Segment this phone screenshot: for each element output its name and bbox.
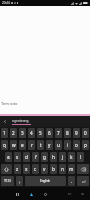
staticText: 2 [12, 130, 15, 136]
staticText: !?123 [4, 179, 11, 183]
staticText: p [84, 142, 87, 148]
button[interactable]: x [23, 164, 30, 174]
staticText: v [43, 166, 46, 172]
button[interactable]: Switch keyboard [12, 189, 22, 199]
staticText: t [40, 142, 42, 148]
button[interactable]: Backspace [77, 164, 89, 174]
button[interactable]: u [55, 140, 62, 150]
staticText: b [52, 166, 55, 172]
button[interactable]: n [59, 164, 66, 174]
staticText: m [69, 166, 74, 172]
staticText: 20:44 [2, 1, 10, 5]
button[interactable]: 8 [64, 128, 71, 138]
button[interactable]: Shift [1, 164, 12, 174]
staticText: ngenteong [12, 119, 29, 123]
staticText: h [52, 154, 55, 160]
button[interactable]: b [50, 164, 57, 174]
button[interactable]: s [14, 152, 21, 162]
staticText: English [40, 179, 51, 183]
button[interactable]: y [46, 140, 53, 150]
button[interactable]: q [1, 140, 8, 150]
button[interactable]: Home [40, 189, 50, 199]
button[interactable]: f [32, 152, 39, 162]
staticText: q [3, 142, 6, 148]
staticText: n [61, 166, 64, 172]
staticText: f [35, 154, 37, 160]
staticText: 4 [30, 130, 33, 136]
button[interactable]: e [19, 140, 26, 150]
staticText: . [71, 178, 73, 184]
staticText: r [31, 142, 33, 148]
button[interactable]: Previous suggestions [2, 116, 8, 127]
button[interactable]: 1 [1, 128, 8, 138]
staticText: g [43, 154, 46, 160]
staticText: 9 [75, 130, 78, 136]
staticText: e [21, 142, 24, 148]
button[interactable]: r [28, 140, 35, 150]
button[interactable]: . [68, 176, 75, 186]
button[interactable]: Hide keyboard [26, 189, 36, 199]
staticText: s [16, 154, 19, 160]
staticText: l [80, 154, 82, 160]
button[interactable]: t [37, 140, 44, 150]
button[interactable]: o [73, 140, 80, 150]
button[interactable]: c [32, 164, 39, 174]
staticText: 0 [84, 130, 87, 136]
staticText: 5 [39, 130, 42, 136]
staticText: x [25, 166, 28, 172]
button[interactable]: m [68, 164, 75, 174]
staticText: 3 [21, 130, 24, 136]
staticText: k [70, 154, 73, 160]
staticText: 7 [57, 130, 60, 136]
button[interactable]: Back [64, 189, 74, 199]
button[interactable]: Recent apps [77, 189, 87, 199]
button[interactable]: l [77, 152, 84, 162]
button[interactable]: 9 [73, 128, 80, 138]
button[interactable]: 5 [37, 128, 44, 138]
button[interactable]: 6 [46, 128, 53, 138]
button[interactable]: 2 [10, 128, 17, 138]
button[interactable]: g [41, 152, 48, 162]
staticText: o [75, 142, 78, 148]
staticText: w [12, 142, 16, 148]
staticText: , [19, 178, 21, 184]
button[interactable]: 4 [28, 128, 35, 138]
button[interactable]: v [41, 164, 48, 174]
button[interactable]: 3 [19, 128, 26, 138]
button[interactable]: 0 [82, 128, 89, 138]
button[interactable]: , [16, 176, 23, 186]
staticText: 8 [66, 130, 69, 136]
button[interactable]: j [59, 152, 66, 162]
button[interactable]: h [50, 152, 57, 162]
button[interactable]: English [25, 176, 66, 186]
staticText: i [67, 142, 69, 148]
button[interactable]: !?123 [1, 176, 14, 186]
staticText: 6 [48, 130, 51, 136]
staticText: d [25, 154, 28, 160]
staticText: 1 [3, 130, 6, 136]
button[interactable]: ngenteong [12, 119, 31, 125]
button[interactable]: a [5, 152, 12, 162]
button[interactable]: 7 [55, 128, 62, 138]
button[interactable]: i [64, 140, 71, 150]
staticText: z [16, 166, 19, 172]
staticText: a [7, 154, 10, 160]
button[interactable]: k [68, 152, 75, 162]
button[interactable]: d [23, 152, 30, 162]
staticText: j [62, 154, 64, 160]
button[interactable]: Enter [77, 176, 89, 186]
staticText: c [34, 166, 37, 172]
button[interactable]: z [14, 164, 21, 174]
button[interactable]: p [82, 140, 89, 150]
button[interactable]: w [10, 140, 17, 150]
staticText: y [48, 142, 51, 148]
staticText: u [57, 142, 60, 148]
staticText: Tem oito [1, 101, 18, 106]
